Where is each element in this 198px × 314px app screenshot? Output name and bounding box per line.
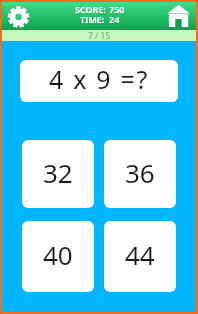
staticText: 32 xyxy=(43,155,73,190)
staticText: 750 xyxy=(109,3,125,13)
staticText: 4 x 9 =? xyxy=(49,62,150,96)
staticText: 44 xyxy=(125,237,155,272)
button[interactable]: Settings xyxy=(8,6,29,28)
button[interactable]: 40 xyxy=(22,221,94,292)
staticText: 7 / 15 xyxy=(88,30,111,41)
staticText: 24 xyxy=(109,13,120,23)
staticText: 36 xyxy=(125,155,155,190)
button[interactable]: 32 xyxy=(22,140,94,208)
staticText: 40 xyxy=(43,237,73,272)
button[interactable]: Home xyxy=(167,5,190,27)
button[interactable]: 44 xyxy=(104,221,176,292)
staticText: SCORE: xyxy=(75,3,105,13)
button[interactable]: 36 xyxy=(104,140,176,208)
staticText: TIME: xyxy=(80,13,105,23)
